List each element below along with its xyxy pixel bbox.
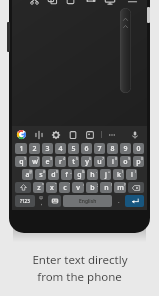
button[interactable]: 7 [94,143,105,154]
staticText: from the phone [37,269,122,285]
staticText: - [96,169,98,174]
button[interactable]: z [33,182,44,193]
staticText: * [42,182,44,187]
staticText: + [108,169,111,174]
staticText: & [82,169,85,174]
staticText: 2 [37,156,40,161]
staticText: 7 [102,156,105,161]
button[interactable]: i [107,156,118,167]
button[interactable]: o [120,156,131,167]
button[interactable]: Stickers [86,131,94,139]
staticText: 4 [63,156,66,161]
button[interactable]: a [22,169,33,180]
staticText: c [63,183,67,193]
staticText: ☺ [39,195,44,200]
button[interactable]: Voice typing [35,131,43,139]
button[interactable]: Period [114,195,123,207]
button[interactable]: n [100,182,112,193]
staticText: o [123,157,128,167]
button[interactable]: e [42,156,53,167]
button[interactable]: Clipboard [69,131,77,139]
button[interactable]: 1 [15,143,27,154]
button[interactable]: s [35,169,46,180]
staticText: 3 [45,144,50,154]
staticText: 0 [141,156,144,161]
staticText: , [41,200,43,207]
button[interactable]: p [133,156,144,167]
button[interactable]: r [55,156,66,167]
staticText: p [136,157,141,167]
button[interactable]: g [74,169,85,180]
button[interactable]: l [126,169,137,180]
staticText: e [45,157,50,167]
staticText: y [85,157,89,167]
staticText: 9 [128,156,131,161]
staticText: 1 [24,156,27,161]
staticText: r [59,157,62,167]
staticText: 7 [97,144,102,154]
button[interactable]: c [59,182,70,193]
button[interactable]: u [94,156,105,167]
staticText: # [43,169,46,174]
button[interactable]: Display [104,0,115,5]
button[interactable]: 8 [107,143,118,154]
staticText: 9 [123,144,128,154]
button[interactable]: f [61,169,72,180]
staticText: 8 [110,144,115,154]
staticText: n [104,183,109,193]
button[interactable]: Google [17,130,26,139]
staticText: s [39,170,43,180]
staticText: q [19,157,24,167]
button[interactable]: Backspace [128,182,144,193]
button[interactable]: Microphone [131,131,139,139]
button[interactable]: w [29,156,40,167]
button[interactable]: Keyboard [85,0,96,5]
staticText: l [131,170,133,180]
button[interactable]: 4 [55,143,66,154]
staticText: ! [111,182,112,187]
button[interactable]: x [46,182,57,193]
button[interactable]: Shift [15,182,31,193]
staticText: t [72,157,75,167]
button[interactable]: 0 [133,143,144,154]
staticText: 3 [50,156,53,161]
button[interactable]: v [72,182,84,193]
button[interactable]: h [87,169,98,180]
button[interactable]: d [48,169,59,180]
button[interactable]: m [114,182,126,193]
button[interactable]: 3 [42,143,53,154]
staticText: 5 [71,144,76,154]
button[interactable]: y [81,156,92,167]
button[interactable]: j [100,169,111,180]
button[interactable]: Copy [47,0,58,5]
button[interactable]: Enter [125,195,144,207]
button[interactable]: Comma [37,195,46,207]
button[interactable]: ?123 [15,195,35,207]
staticText: " [55,182,57,187]
button[interactable]: t [68,156,79,167]
button[interactable]: Menu [127,0,138,5]
button[interactable]: 9 [120,143,131,154]
button[interactable]: b [86,182,98,193]
staticText: v [76,183,80,193]
staticText: w [32,157,38,167]
button[interactable]: English [63,195,112,207]
staticText: ; [97,182,98,187]
button[interactable]: More [108,131,116,139]
staticText: 0 [136,144,141,154]
button[interactable]: 2 [29,143,40,154]
button[interactable]: Cut [29,0,40,5]
button[interactable]: Settings [52,131,60,139]
button[interactable]: Paste [65,0,76,5]
staticText: $ [56,169,59,174]
staticText: f [65,170,68,180]
button[interactable]: 6 [81,143,92,154]
staticText: . [118,197,120,205]
staticText: 5 [76,156,79,161]
button[interactable]: 5 [68,143,79,154]
button[interactable]: q [15,156,27,167]
staticText: @ [29,169,33,174]
button[interactable]: k [113,169,124,180]
staticText: _ [70,169,72,174]
button[interactable]: Emoji [48,195,61,207]
